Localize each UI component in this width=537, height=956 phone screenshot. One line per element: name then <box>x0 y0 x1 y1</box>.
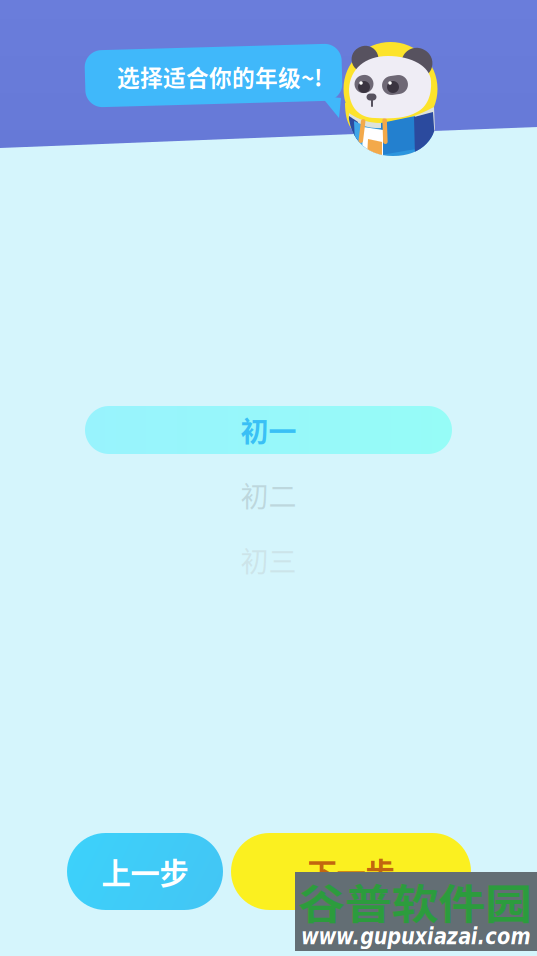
staticText: www.gupuxiazai.com <box>301 923 537 946</box>
button[interactable]: 初二 <box>85 471 452 519</box>
button[interactable]: 上一步 <box>67 833 223 910</box>
staticText: 初一 <box>240 410 296 450</box>
staticText: 谷普软件园 <box>298 871 503 931</box>
staticText: 上一步 <box>101 850 188 893</box>
staticText: 初二 <box>240 475 296 515</box>
button[interactable]: 初一 <box>85 406 452 454</box>
staticText: 选择适合你的年级~! <box>117 60 322 93</box>
staticText: 初三 <box>240 540 296 580</box>
staticText: 下一步 <box>307 850 394 893</box>
button[interactable]: 下一步 <box>231 833 471 910</box>
